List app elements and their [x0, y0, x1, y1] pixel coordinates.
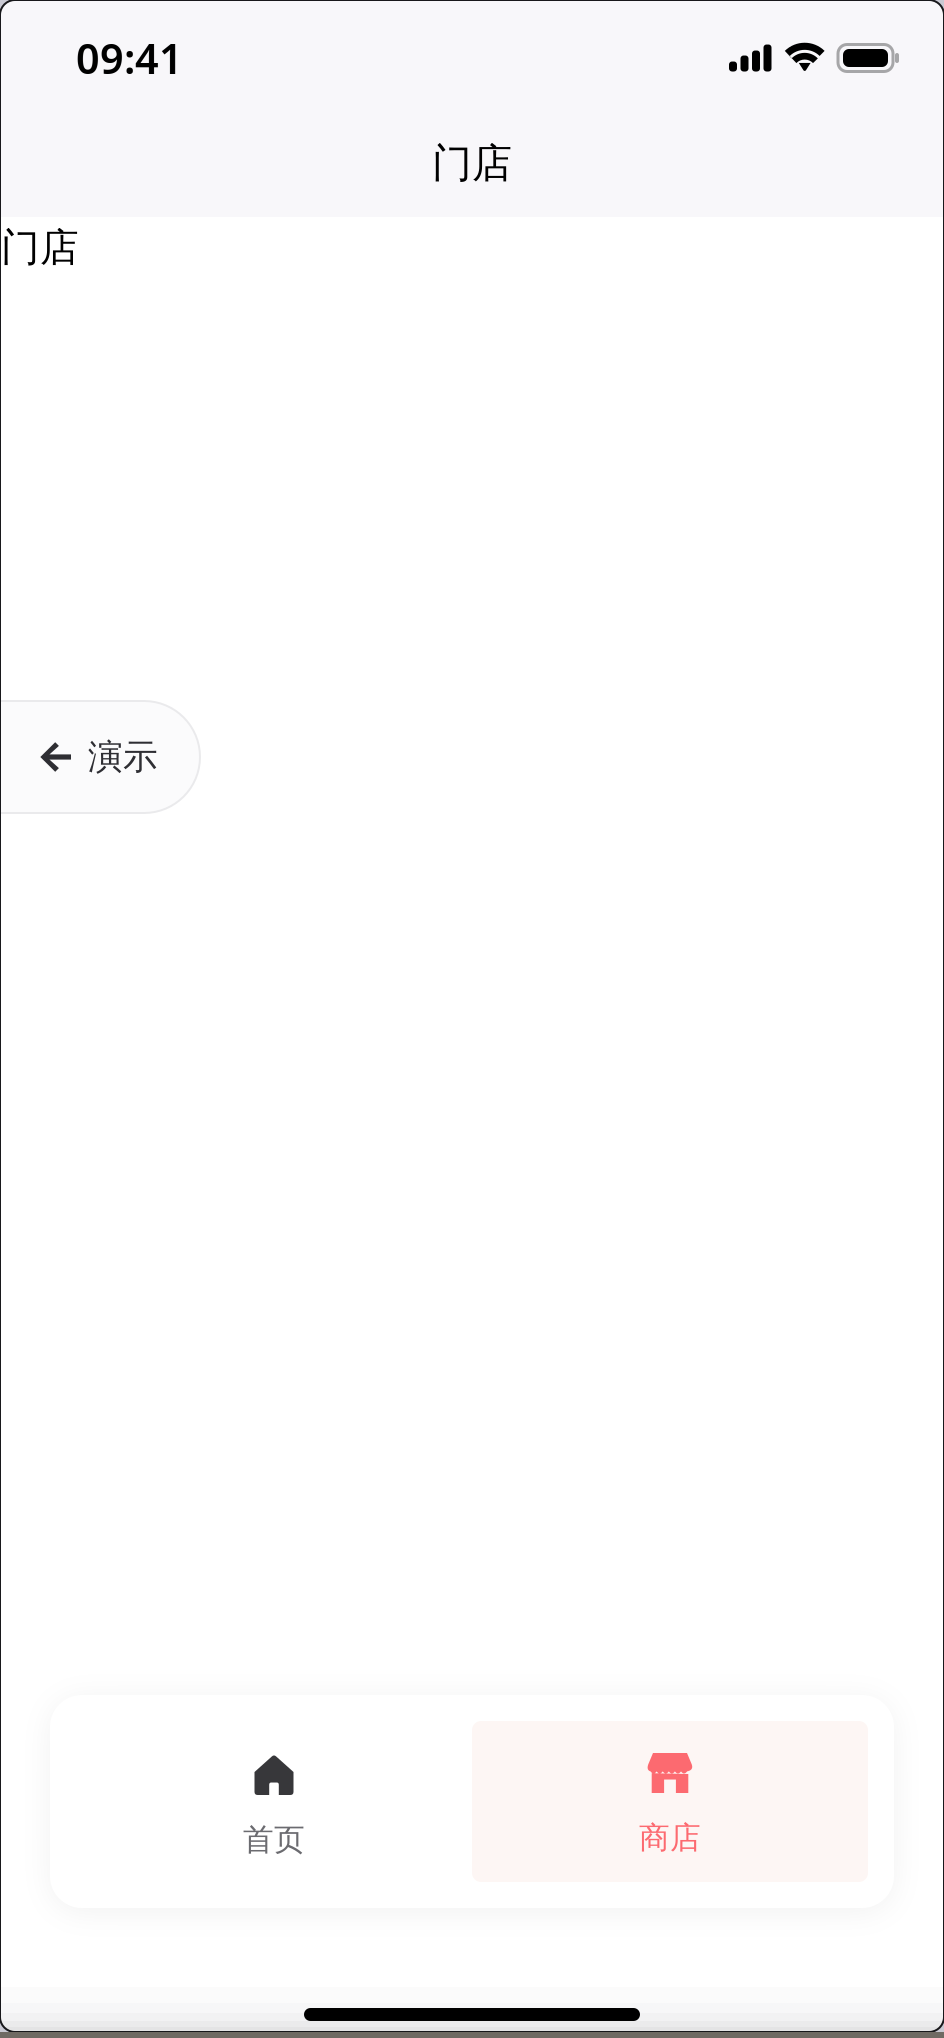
staticText: 首页: [243, 1821, 305, 1859]
button[interactable]: 首页: [76, 1721, 472, 1882]
staticText: 演示: [88, 736, 158, 778]
button[interactable]: 商店: [472, 1721, 868, 1882]
staticText: 门店: [1, 224, 79, 271]
staticText: 09:41: [76, 31, 183, 85]
button[interactable]: 演示: [0, 701, 200, 813]
staticText: 商店: [639, 1819, 701, 1857]
staticText: 门店: [432, 139, 512, 188]
